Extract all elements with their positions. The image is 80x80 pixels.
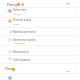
button[interactable] — [0, 7, 80, 17]
staticText: Select item — [13, 8, 27, 12]
staticText: Review tool menu — [13, 30, 36, 34]
button[interactable] — [0, 36, 80, 46]
button[interactable] — [0, 28, 80, 36]
staticText: Interactive stories — [13, 38, 36, 42]
button[interactable] — [0, 74, 80, 80]
button[interactable] — [0, 56, 80, 64]
staticText: 97/100 — [13, 12, 22, 15]
staticText: Color options — [13, 58, 30, 62]
staticText: Find me a way — [13, 18, 32, 22]
staticText: 5 of 7 — [13, 22, 20, 25]
button[interactable]: Sort plans — [64, 69, 72, 74]
staticText: Record tools — [13, 50, 29, 54]
staticText: Design — [7, 2, 19, 7]
staticText: ••• — [66, 2, 70, 6]
button[interactable] — [0, 0, 80, 7]
staticText: ••• — [66, 70, 70, 74]
button[interactable] — [0, 17, 80, 28]
staticText: Plans — [5, 67, 14, 71]
button[interactable]: More options — [64, 1, 72, 6]
staticText: Tomorrow — [13, 41, 26, 44]
button[interactable] — [0, 46, 80, 56]
